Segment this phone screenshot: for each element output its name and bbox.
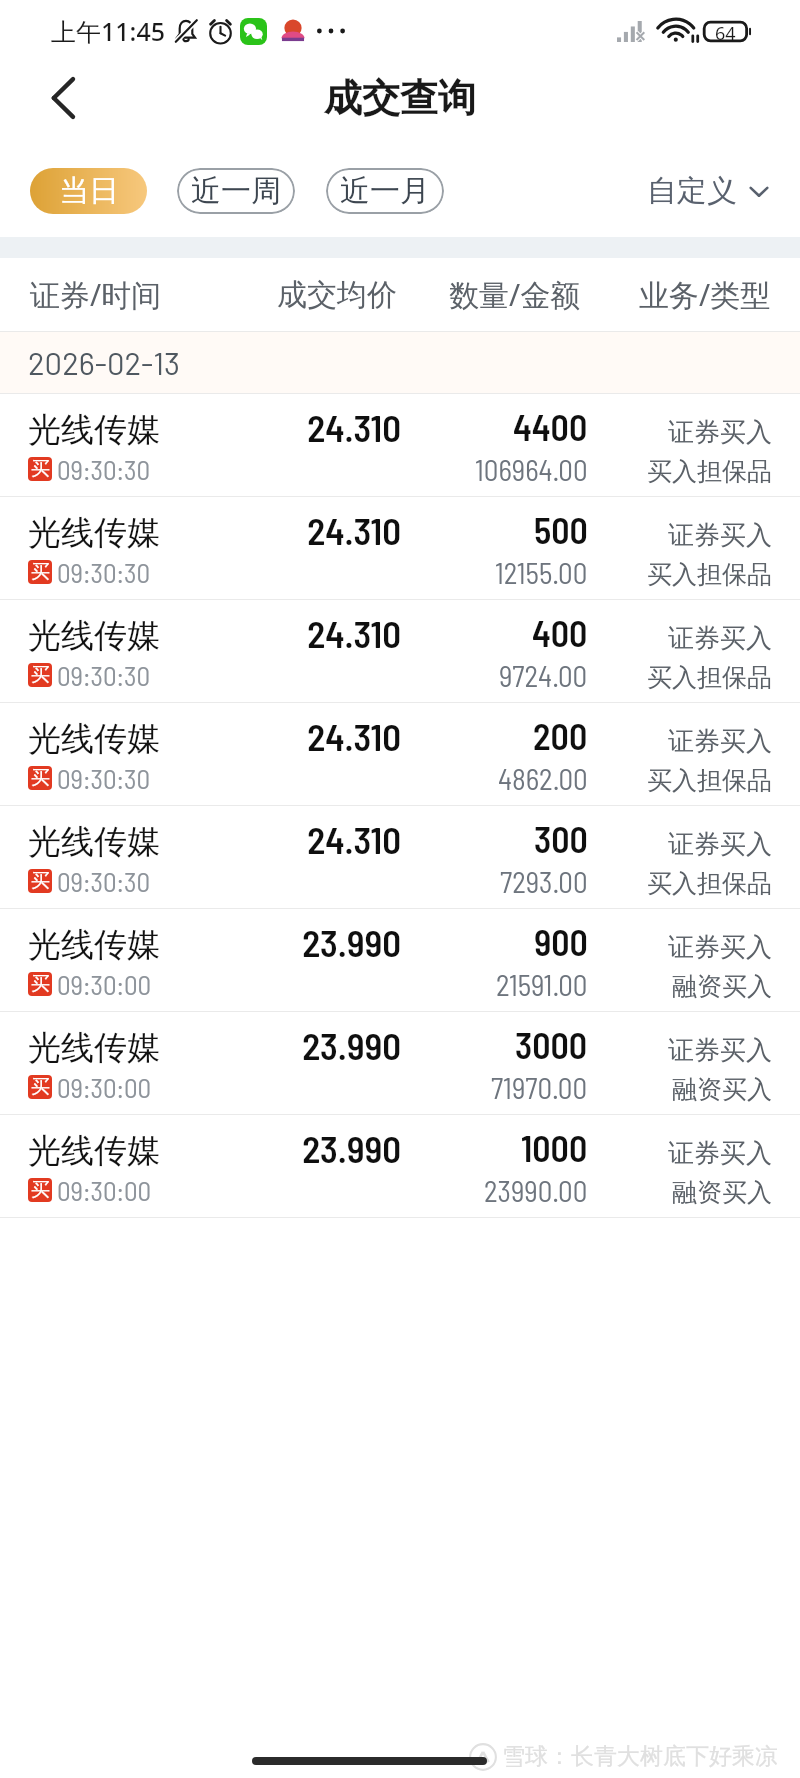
- button[interactable]: 光线传媒: [0, 806, 800, 909]
- staticText: 融资买入: [672, 971, 772, 1002]
- staticText: 9724.00: [499, 658, 588, 693]
- staticText: 09:30:00: [57, 968, 152, 1000]
- staticText: 23.990: [150, 1023, 401, 1067]
- staticText: 融资买入: [672, 1074, 772, 1105]
- staticText: 71970.00: [491, 1070, 588, 1105]
- staticText: 证券买入: [668, 1137, 772, 1170]
- button[interactable]: 光线传媒: [0, 1012, 800, 1115]
- staticText: 买入担保品: [647, 765, 772, 796]
- staticText: 21591.00: [496, 967, 588, 1002]
- button[interactable]: 自定义: [647, 172, 772, 210]
- staticText: 09:30:00: [57, 1174, 152, 1206]
- staticText: 2026-02-13: [28, 344, 181, 381]
- staticText: 业务/类型: [639, 274, 771, 315]
- staticText: 证券买入: [668, 725, 772, 758]
- staticText: 光线传媒: [28, 615, 160, 657]
- staticText: 24.310: [150, 611, 401, 655]
- staticText: 光线传媒: [28, 718, 160, 760]
- staticText: 3000: [515, 1023, 588, 1066]
- staticText: 光线传媒: [28, 409, 160, 451]
- button[interactable]: 近一周: [177, 168, 295, 214]
- staticText: 当日: [59, 172, 119, 210]
- staticText: 买: [31, 972, 50, 996]
- staticText: 23.990: [150, 1126, 401, 1170]
- staticText: 光线传媒: [28, 924, 160, 966]
- staticText: 证券买入: [668, 519, 772, 552]
- staticText: 数量/金额: [449, 274, 581, 315]
- staticText: 24.310: [150, 714, 401, 758]
- staticText: 光线传媒: [28, 512, 160, 554]
- staticText: 23.990: [150, 920, 401, 964]
- button[interactable]: 光线传媒: [0, 394, 800, 497]
- staticText: 光线传媒: [28, 1027, 160, 1069]
- staticText: 近一月: [340, 172, 430, 210]
- staticText: 7293.00: [500, 864, 588, 899]
- button[interactable]: 光线传媒: [0, 497, 800, 600]
- staticText: 买: [31, 663, 50, 687]
- staticText: 自定义: [647, 172, 737, 210]
- staticText: 证券/时间: [30, 274, 162, 315]
- staticText: 300: [534, 817, 588, 860]
- staticText: 买: [31, 1075, 50, 1099]
- staticText: 成交均价: [277, 276, 397, 314]
- button[interactable]: 返回: [31, 65, 97, 131]
- staticText: 64: [715, 21, 736, 42]
- staticText: 光线传媒: [28, 1130, 160, 1172]
- staticText: 500: [534, 508, 588, 551]
- button[interactable]: 光线传媒: [0, 600, 800, 703]
- staticText: 23990.00: [484, 1173, 588, 1208]
- staticText: 买: [31, 869, 50, 893]
- staticText: 1000: [521, 1126, 588, 1169]
- staticText: 400: [532, 611, 588, 654]
- staticText: 24.310: [150, 817, 401, 861]
- staticText: 证券买入: [668, 1034, 772, 1067]
- staticText: 106964.00: [475, 452, 588, 487]
- staticText: 12155.00: [495, 555, 588, 590]
- staticText: 光线传媒: [28, 821, 160, 863]
- staticText: 09:30:30: [57, 659, 151, 691]
- staticText: 09:30:30: [57, 556, 151, 588]
- staticText: 证券买入: [668, 931, 772, 964]
- button[interactable]: 光线传媒: [0, 1115, 800, 1218]
- staticText: 09:30:30: [57, 865, 151, 897]
- staticText: 买入担保品: [647, 456, 772, 487]
- staticText: 买: [31, 1178, 50, 1202]
- button[interactable]: 近一月: [326, 168, 444, 214]
- button[interactable]: 光线传媒: [0, 703, 800, 806]
- button[interactable]: 光线传媒: [0, 909, 800, 1012]
- staticText: 4400: [513, 405, 588, 448]
- staticText: 上午11:45: [51, 14, 166, 48]
- staticText: 买: [31, 560, 50, 584]
- staticText: 买入担保品: [647, 559, 772, 590]
- staticText: 买入担保品: [647, 868, 772, 899]
- staticText: 雪球：长青大树底下好乘凉: [502, 1742, 778, 1771]
- staticText: 证券买入: [668, 416, 772, 449]
- staticText: 成交查询: [324, 74, 476, 122]
- staticText: 证券买入: [668, 622, 772, 655]
- button[interactable]: 当日: [30, 168, 147, 214]
- staticText: 09:30:30: [57, 762, 151, 794]
- staticText: 买: [31, 457, 50, 481]
- staticText: 200: [533, 714, 588, 757]
- staticText: 买: [31, 766, 50, 790]
- staticText: 买入担保品: [647, 662, 772, 693]
- staticText: 24.310: [150, 508, 401, 552]
- staticText: 4862.00: [498, 761, 588, 796]
- staticText: 近一周: [191, 172, 281, 210]
- staticText: 900: [534, 920, 588, 963]
- staticText: 证券买入: [668, 828, 772, 861]
- staticText: 09:30:30: [57, 453, 151, 485]
- staticText: 24.310: [150, 405, 401, 449]
- staticText: 融资买入: [672, 1177, 772, 1208]
- staticText: 09:30:00: [57, 1071, 152, 1103]
